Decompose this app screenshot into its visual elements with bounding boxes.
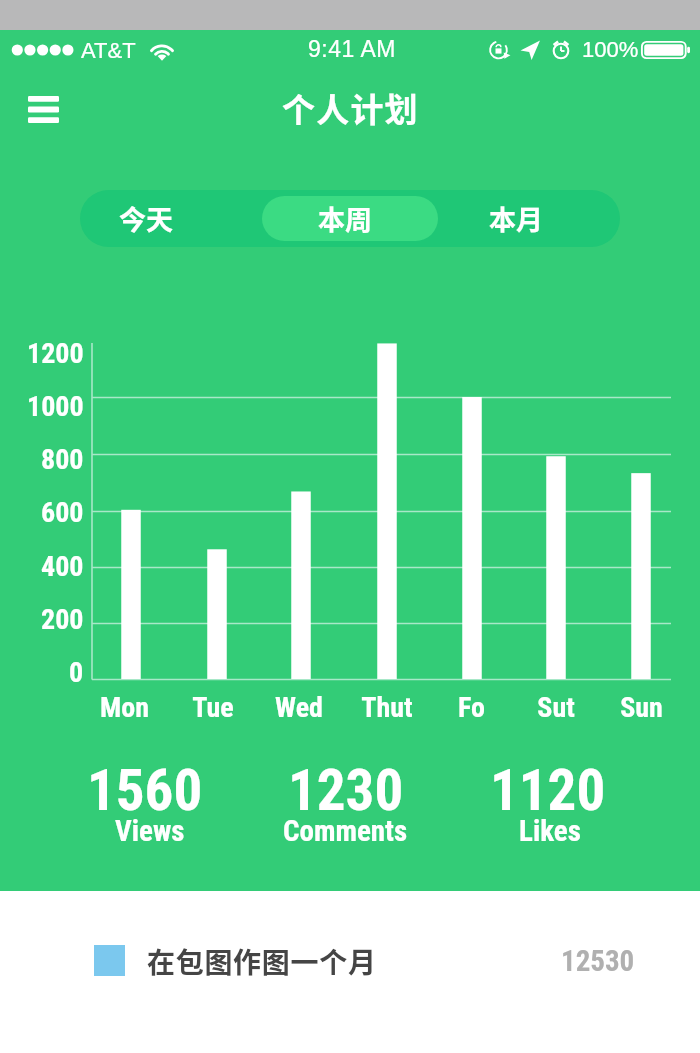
- staticText: Views: [115, 814, 185, 848]
- staticText: 9:41 AM: [308, 36, 396, 62]
- staticText: 本月: [489, 199, 543, 238]
- staticText: 200: [41, 603, 84, 636]
- staticText: 0: [69, 656, 84, 689]
- staticText: 1120: [490, 757, 606, 811]
- staticText: 12530: [561, 944, 635, 978]
- staticText: Wed: [275, 691, 323, 724]
- button[interactable]: 今天: [80, 190, 262, 247]
- staticText: AT&T: [81, 38, 136, 63]
- staticText: 1000: [27, 390, 84, 423]
- staticText: 1230: [288, 757, 404, 811]
- button[interactable]: 本月: [438, 190, 620, 247]
- button[interactable]: Menu: [13, 79, 73, 139]
- staticText: Thut: [361, 691, 413, 724]
- staticText: Sun: [620, 691, 663, 724]
- staticText: Mon: [100, 691, 149, 724]
- staticText: 本周: [318, 199, 372, 238]
- staticText: 600: [41, 496, 84, 529]
- staticText: 400: [41, 550, 84, 583]
- staticText: 个人计划: [282, 84, 419, 132]
- button[interactable]: 在包图作图一个月: [0, 911, 700, 1011]
- staticText: 1560: [87, 757, 203, 811]
- staticText: Tue: [192, 691, 234, 724]
- staticText: Likes: [519, 814, 581, 848]
- staticText: 1200: [27, 337, 84, 370]
- staticText: Comments: [283, 814, 408, 848]
- button[interactable]: 本周: [262, 196, 438, 241]
- staticText: Sut: [537, 691, 575, 724]
- staticText: 今天: [119, 199, 173, 238]
- staticText: 800: [41, 443, 84, 476]
- staticText: 100%: [582, 37, 639, 62]
- staticText: 在包图作图一个月: [147, 941, 377, 981]
- staticText: Fo: [458, 691, 485, 724]
